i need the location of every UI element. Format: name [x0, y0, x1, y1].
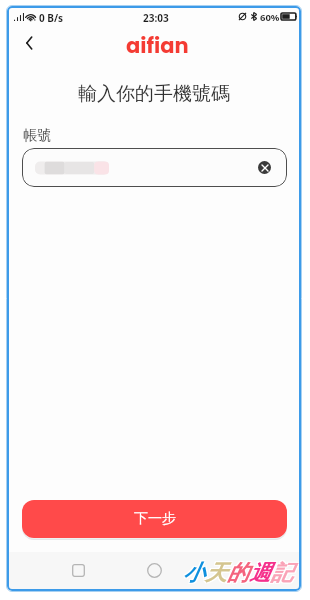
- staticText: 週: [248, 558, 270, 585]
- staticText: 週: [250, 558, 272, 585]
- staticText: 的: [226, 558, 248, 585]
- staticText: 週: [250, 560, 272, 587]
- staticText: 下一步: [134, 510, 176, 528]
- staticText: 記: [272, 558, 294, 585]
- staticText: 天: [204, 560, 226, 587]
- staticText: 記: [270, 560, 292, 587]
- staticText: 小: [183, 559, 205, 586]
- staticText: 週: [248, 560, 270, 587]
- staticText: 天: [205, 559, 227, 586]
- button[interactable]: Recent apps: [60, 553, 96, 588]
- staticText: 的: [228, 558, 250, 585]
- button[interactable]: Clear: [258, 161, 271, 174]
- button[interactable]: Phone number field: [22, 148, 287, 187]
- staticText: 的: [228, 560, 250, 587]
- staticText: 小: [184, 558, 206, 585]
- staticText: 天: [206, 560, 228, 587]
- button[interactable]: Back: [15, 29, 43, 57]
- staticText: 記: [272, 560, 294, 587]
- staticText: 小: [182, 558, 204, 585]
- staticText: 天: [204, 558, 226, 585]
- staticText: 記: [270, 558, 292, 585]
- staticText: 小: [184, 560, 206, 587]
- staticText: 的: [227, 559, 249, 586]
- staticText: 週: [249, 559, 271, 586]
- button[interactable]: 下一步: [22, 500, 287, 538]
- staticText: 記: [271, 559, 293, 586]
- staticText: 輸入你的手機號碼: [9, 82, 299, 106]
- staticText: aifian: [126, 31, 189, 60]
- staticText: 小: [182, 560, 204, 587]
- staticText: 0 B/s: [39, 11, 64, 25]
- staticText: 的: [226, 560, 248, 587]
- button[interactable]: Home: [136, 552, 172, 588]
- staticText: 天: [206, 558, 228, 585]
- staticText: 60%: [260, 11, 280, 24]
- staticText: 23:03: [143, 11, 169, 25]
- staticText: 帳號: [23, 127, 51, 145]
